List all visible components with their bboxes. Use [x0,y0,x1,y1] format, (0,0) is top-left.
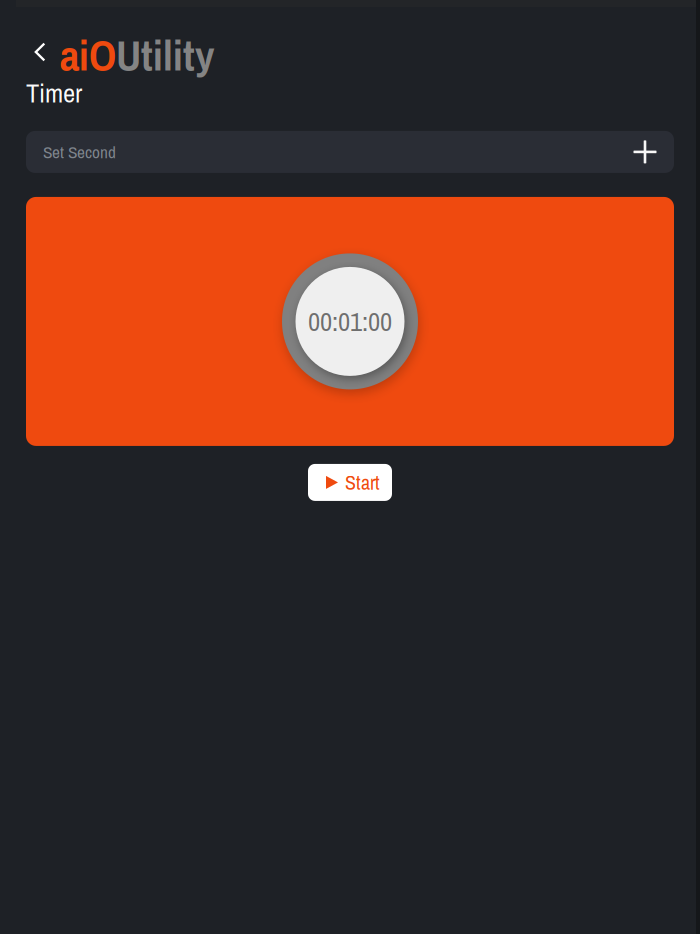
staticText: Start [345,469,380,496]
staticText: Set Second [43,140,116,163]
staticText: 00:01:00 [308,303,392,339]
staticText: Timer [26,75,82,111]
staticText: aiO [60,26,116,84]
staticText: Utility [116,26,214,84]
button[interactable]: Back [28,38,52,72]
button[interactable]: Start [308,464,392,501]
button[interactable]: Add [616,131,674,173]
